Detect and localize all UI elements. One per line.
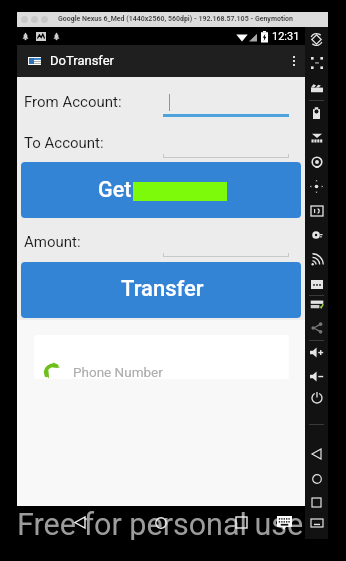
- button[interactable]: Show keyboard: [268, 506, 300, 539]
- staticText: Amount:: [24, 233, 81, 251]
- button[interactable]: Webcam: [305, 152, 328, 172]
- button[interactable]: Rotate: [305, 29, 328, 49]
- button[interactable]: Window control: [41, 16, 48, 23]
- button[interactable]: Get: [21, 162, 301, 218]
- staticText: Transfer: [121, 276, 204, 302]
- staticText: Get: [98, 177, 132, 202]
- button[interactable]: Recent apps: [225, 506, 257, 539]
- button[interactable]: Camera: [305, 78, 328, 98]
- button[interactable]: Home: [305, 469, 328, 489]
- button[interactable]: Home: [145, 506, 177, 539]
- button[interactable]: Network: [305, 250, 328, 270]
- button[interactable]: Disk: [305, 225, 328, 245]
- staticText: 12:31: [272, 30, 300, 43]
- button[interactable]: Phone Number: [34, 335, 289, 379]
- button[interactable]: Volume down: [305, 366, 328, 386]
- button[interactable]: GPS: [305, 127, 328, 147]
- button[interactable]: Identifiers: [305, 201, 328, 221]
- button[interactable]: Volume up: [305, 342, 328, 362]
- button[interactable]: Window control: [31, 16, 38, 23]
- button[interactable]: Battery: [305, 103, 328, 123]
- button[interactable]: Power: [305, 388, 328, 408]
- button[interactable]: Share: [305, 318, 328, 338]
- staticText: Free for personal use: [17, 507, 305, 540]
- staticText: Google Nexus 6_Med (1440x2560, 560dpi) -…: [58, 15, 293, 23]
- button[interactable]: OpenGapps: [305, 295, 328, 315]
- button[interactable]: Accelerometer: [305, 176, 328, 196]
- staticText: DoTransfer: [50, 53, 115, 68]
- button[interactable]: Back: [64, 506, 96, 539]
- button[interactable]: Window control: [21, 16, 28, 23]
- button[interactable]: More options: [283, 45, 305, 77]
- staticText: Phone Number: [73, 364, 163, 379]
- button[interactable]: Keyboard: [305, 513, 328, 533]
- button[interactable]: More: [305, 274, 328, 294]
- staticText: To Account:: [24, 134, 104, 152]
- button[interactable]: Back: [305, 444, 328, 464]
- button[interactable]: Recent apps: [305, 492, 328, 512]
- button[interactable]: Fullscreen: [305, 53, 328, 73]
- button[interactable]: Transfer: [21, 262, 301, 318]
- staticText: From Account:: [24, 93, 122, 111]
